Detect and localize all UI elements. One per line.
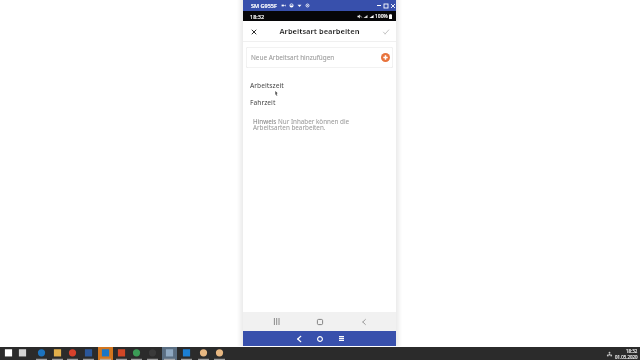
button[interactable]: Neue Arbeitsart hinzufügen — [246, 47, 393, 68]
button[interactable]: Home — [312, 331, 328, 346]
staticText: 18:32 — [250, 13, 265, 20]
button[interactable]: Settings — [304, 2, 311, 9]
button[interactable]: Back — [291, 331, 307, 346]
staticText: 01.05.2020 — [615, 354, 638, 360]
button[interactable]: Chrome — [129, 347, 144, 360]
button[interactable]: App — [145, 347, 160, 360]
staticText: Arbeitszeit — [250, 81, 284, 90]
button[interactable]: Arbeitszeit — [243, 77, 396, 94]
button[interactable]: App — [179, 347, 194, 360]
button[interactable]: Home — [308, 312, 331, 331]
button[interactable]: Close — [389, 0, 396, 11]
button[interactable]: App — [162, 347, 177, 360]
staticText: Fahrzeit — [250, 98, 276, 107]
button[interactable]: Task View — [15, 347, 30, 360]
staticText: SM G955F — [251, 2, 277, 9]
staticText: 18:32 — [626, 348, 638, 354]
button[interactable]: Wifi — [296, 2, 303, 9]
button[interactable]: Minimize — [375, 0, 382, 11]
button[interactable]: Outlook — [98, 347, 113, 360]
button[interactable]: Add work type — [381, 53, 390, 62]
button[interactable]: Back — [352, 312, 375, 331]
button[interactable]: App — [212, 347, 227, 360]
staticText: Arbeitsart bearbeiten — [279, 26, 360, 36]
button[interactable]: Microsoft Edge — [34, 347, 49, 360]
staticText: Neue Arbeitsart hinzufügen — [251, 53, 335, 62]
button[interactable]: App — [196, 347, 211, 360]
button[interactable]: PowerPoint — [114, 347, 129, 360]
button[interactable]: Close — [243, 21, 265, 42]
button[interactable]: Firefox — [65, 347, 80, 360]
button[interactable]: File Explorer — [50, 347, 65, 360]
button[interactable]: Maximize — [382, 0, 389, 11]
button[interactable]: Word — [81, 347, 96, 360]
button[interactable]: Start — [1, 347, 16, 360]
button[interactable]: Fahrzeit — [243, 94, 396, 111]
staticText: 100% — [375, 13, 388, 20]
button[interactable]: Audio — [288, 2, 295, 9]
button[interactable]: Recents — [265, 312, 288, 331]
staticText: Hinweis Nur Inhaber können die Arbeitsar… — [253, 117, 352, 132]
button[interactable]: Cast — [280, 2, 287, 9]
button[interactable]: Recents — [333, 331, 349, 346]
button[interactable]: Save — [376, 21, 396, 42]
